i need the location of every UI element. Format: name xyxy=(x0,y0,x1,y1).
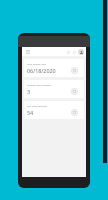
button[interactable]: Unit count delivered xyxy=(24,101,84,119)
button[interactable]: Work Delivery Date xyxy=(24,59,84,77)
button[interactable]: Edit xyxy=(70,108,78,116)
staticText: Unit count delivered xyxy=(27,105,47,108)
button[interactable]: Account xyxy=(78,49,84,55)
staticText: Work Delivery Date xyxy=(27,63,46,66)
staticText: 06/18/2020 xyxy=(27,67,56,74)
staticText: 3 xyxy=(27,88,31,95)
staticText: Package count delivered xyxy=(27,84,51,87)
button[interactable]: Search xyxy=(65,49,71,55)
button[interactable]: Edit xyxy=(70,87,78,95)
button[interactable]: Menu xyxy=(24,48,31,55)
button[interactable]: More options xyxy=(71,49,77,55)
button[interactable]: Package count delivered xyxy=(24,80,84,98)
button[interactable]: Edit xyxy=(70,66,78,74)
staticText: 54 xyxy=(27,109,34,116)
